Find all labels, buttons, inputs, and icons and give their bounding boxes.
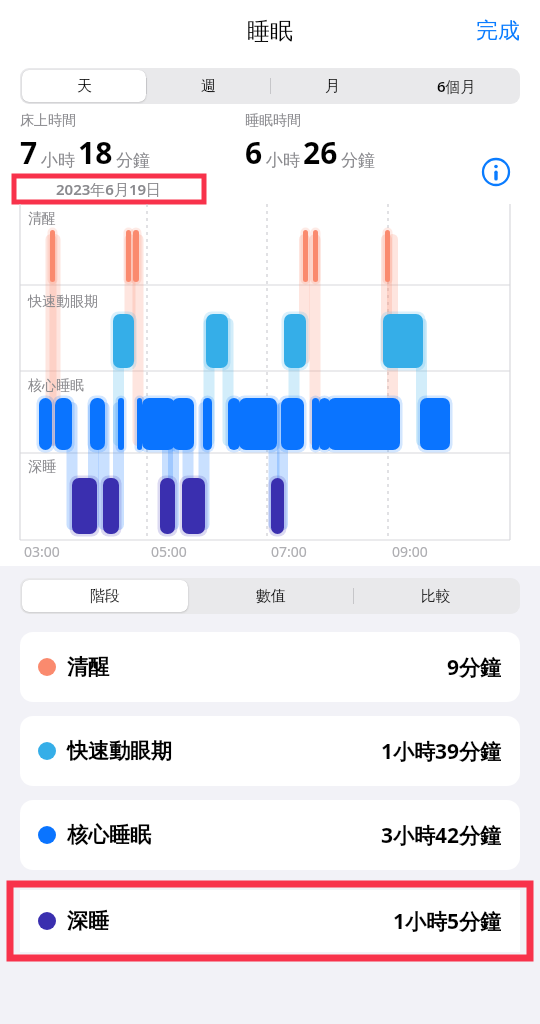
- staticText: 清醒: [28, 210, 56, 228]
- button[interactable]: 清醒: [20, 632, 520, 702]
- staticText: 7: [20, 132, 38, 173]
- button[interactable]: 月: [270, 70, 394, 102]
- staticText: 月: [325, 77, 340, 96]
- staticText: 核心睡眠: [28, 377, 84, 395]
- button[interactable]: 數值: [188, 580, 353, 612]
- staticText: 分鐘: [341, 150, 375, 171]
- staticText: 3小時42分鐘: [381, 821, 502, 850]
- staticText: 9分鐘: [447, 653, 502, 682]
- staticText: 比較: [421, 587, 451, 606]
- button[interactable]: 核心睡眠: [20, 800, 520, 870]
- staticText: 清醒: [67, 654, 109, 680]
- button[interactable]: 快速動眼期: [20, 716, 520, 786]
- staticText: 6: [245, 132, 263, 173]
- staticText: 26: [303, 132, 338, 173]
- button[interactable]: 完成: [470, 11, 526, 51]
- staticText: 深睡: [67, 908, 109, 934]
- staticText: 天: [77, 77, 92, 96]
- button[interactable]: 天: [22, 70, 146, 102]
- staticText: 1小時5分鐘: [393, 907, 502, 936]
- staticText: 03:00: [24, 542, 60, 561]
- staticText: 09:00: [392, 542, 428, 561]
- button[interactable]: 階段: [22, 580, 188, 612]
- staticText: 床上時間: [20, 112, 76, 130]
- staticText: 小時: [266, 150, 300, 171]
- button[interactable]: 週: [146, 70, 270, 102]
- staticText: 07:00: [271, 542, 307, 561]
- button[interactable]: More information: [478, 154, 514, 190]
- staticText: 睡眠: [247, 17, 293, 46]
- staticText: 睡眠時間: [245, 112, 301, 130]
- staticText: 快速動眼期: [67, 738, 172, 764]
- button[interactable]: 6個月: [394, 70, 518, 102]
- staticText: 18: [78, 132, 113, 173]
- staticText: 2023年6月19日: [56, 179, 162, 199]
- staticText: 核心睡眠: [67, 822, 151, 848]
- staticText: 深睡: [28, 458, 56, 476]
- staticText: 數值: [256, 587, 286, 606]
- staticText: 完成: [476, 17, 520, 45]
- staticText: 05:00: [151, 542, 187, 561]
- staticText: 6個月: [437, 76, 476, 96]
- staticText: 階段: [90, 587, 120, 606]
- staticText: 小時: [41, 150, 75, 171]
- staticText: 分鐘: [116, 150, 150, 171]
- staticText: 1小時39分鐘: [381, 737, 502, 766]
- staticText: 快速動眼期: [28, 293, 98, 311]
- staticText: 週: [201, 77, 216, 96]
- button[interactable]: 比較: [353, 580, 518, 612]
- button[interactable]: 深睡: [20, 890, 520, 952]
